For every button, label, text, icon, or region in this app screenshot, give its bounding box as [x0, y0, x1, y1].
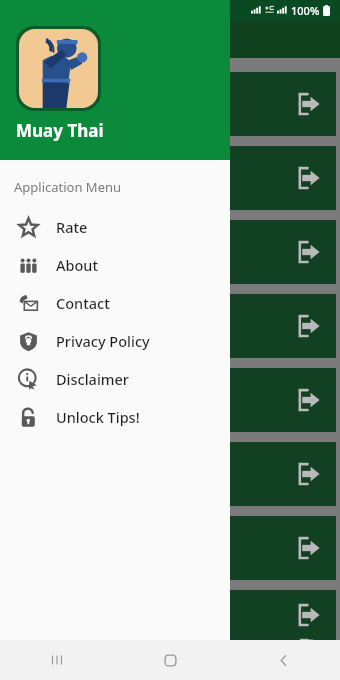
staticText: Muay Thai Techniques — [16, 28, 193, 51]
button[interactable]: Jab & Cross — [4, 146, 336, 210]
staticText: Unlock Tips! — [56, 407, 140, 427]
staticText: Roundhouse Kick — [18, 242, 292, 262]
other: Open — [292, 311, 322, 341]
button[interactable]: Back — [227, 640, 340, 680]
button[interactable]: Clinch Work — [4, 442, 336, 506]
staticText: Clinch Work — [18, 464, 292, 484]
other: Open — [292, 533, 322, 563]
button[interactable]: About — [0, 246, 230, 284]
staticText: Basic Stance — [18, 94, 292, 114]
staticText: 100% — [291, 3, 320, 18]
staticText: Rate — [56, 217, 88, 237]
button[interactable]: Elbow Strikes — [4, 294, 336, 358]
button[interactable]: Shadow Boxing — [4, 590, 336, 640]
other: Open — [292, 600, 322, 630]
button[interactable]: Defensive Movement — [4, 516, 336, 580]
button[interactable]: Basic Stance — [4, 72, 336, 136]
button[interactable]: Unlock Tips! — [0, 398, 230, 436]
staticText: Shadow Boxing — [18, 605, 292, 625]
button[interactable]: Rate — [0, 208, 230, 246]
staticText: Contact — [56, 293, 110, 313]
staticText: Disclaimer — [56, 369, 129, 389]
staticText: Elbow Strikes — [18, 316, 292, 336]
staticText: About — [56, 255, 98, 275]
staticText: Muay Thai — [16, 119, 104, 142]
staticText: Privacy Policy — [56, 331, 150, 351]
button[interactable]: Contact — [0, 284, 230, 322]
button[interactable]: Roundhouse Kick — [4, 220, 336, 284]
button[interactable]: Disclaimer — [0, 360, 230, 398]
button[interactable]: Home — [114, 640, 227, 680]
button[interactable]: Knee Strikes — [4, 368, 336, 432]
staticText: Defensive Movement — [18, 538, 292, 558]
other: Open — [292, 89, 322, 119]
other: Open — [292, 459, 322, 489]
other: Open — [292, 237, 322, 267]
other: Open — [292, 163, 322, 193]
staticText: Application Menu — [14, 178, 122, 196]
other: Open — [292, 385, 322, 415]
staticText: Jab & Cross — [18, 168, 292, 188]
staticText: Knee Strikes — [18, 390, 292, 410]
button[interactable]: Recents — [0, 640, 114, 680]
button[interactable]: Privacy Policy — [0, 322, 230, 360]
